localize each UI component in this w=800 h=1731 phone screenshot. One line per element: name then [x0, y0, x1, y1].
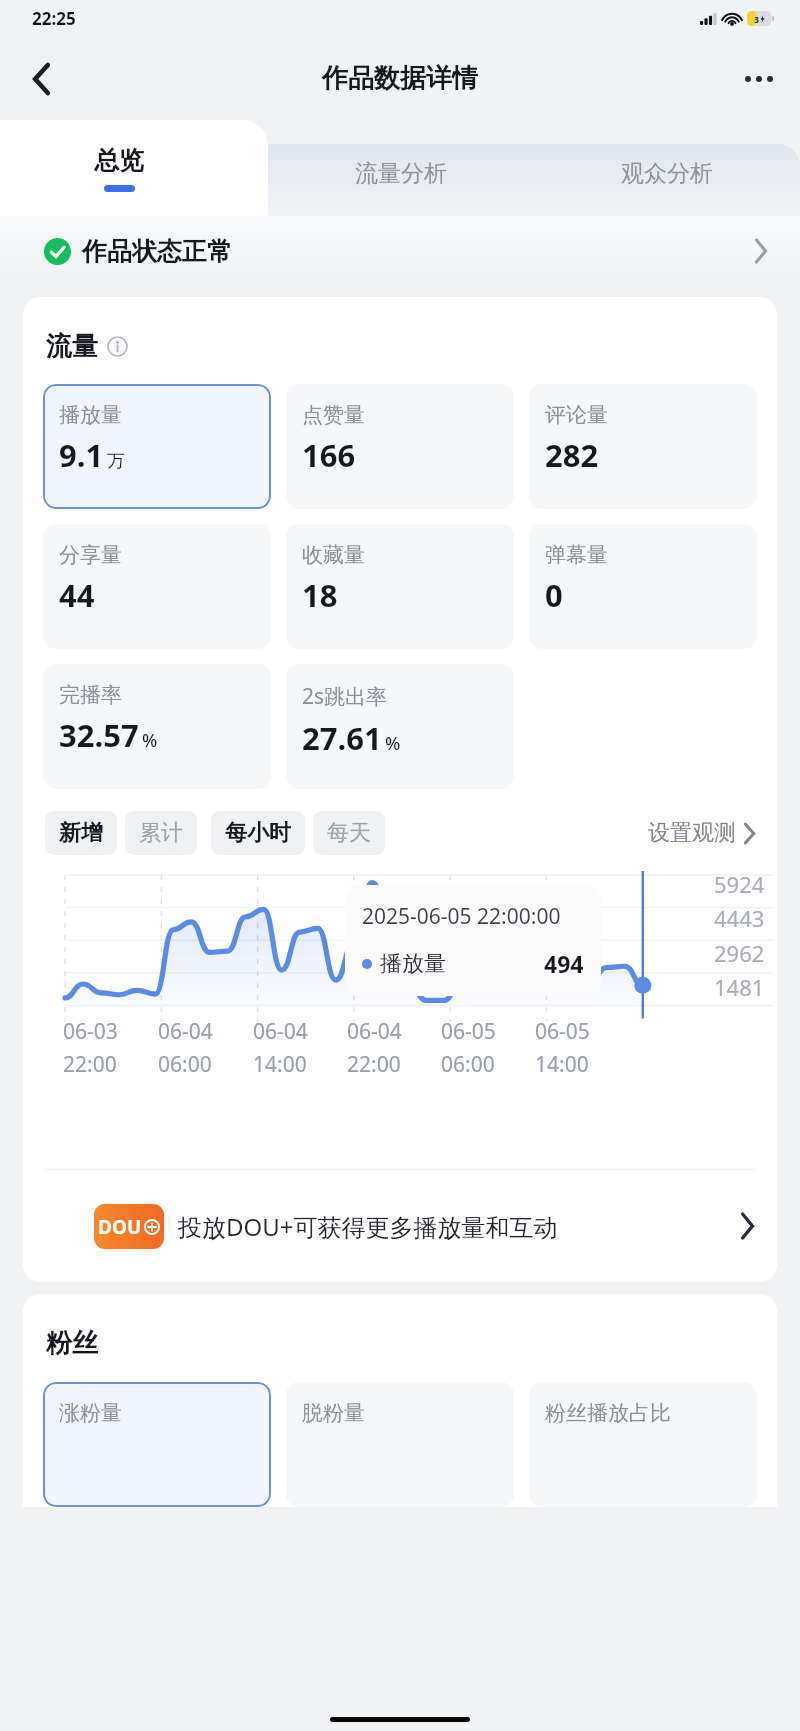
staticText: 投放DOU+可获得更多播放量和互动: [178, 1210, 558, 1243]
staticText: 完播率: [59, 682, 122, 708]
staticText: 2s跳出率: [302, 682, 388, 711]
staticText: 流量分析: [355, 159, 447, 188]
staticText: 每小时: [225, 819, 291, 847]
staticText: 收藏量: [302, 542, 365, 568]
button[interactable]: 每小时: [211, 811, 305, 855]
staticText: 9.1: [59, 434, 104, 476]
staticText: 06-04: [158, 1017, 213, 1046]
staticText: 涨粉量: [59, 1400, 122, 1426]
staticText: DOU: [98, 1214, 142, 1240]
staticText: 分享量: [59, 542, 122, 568]
staticText: %: [385, 731, 401, 756]
staticText: 4443: [714, 903, 765, 933]
button[interactable]: 新增: [45, 811, 117, 855]
staticText: 494: [544, 948, 584, 979]
staticText: 点赞量: [302, 402, 365, 428]
staticText: 评论量: [545, 402, 608, 428]
button[interactable]: 观众分析: [534, 144, 800, 216]
staticText: 22:25: [32, 7, 76, 30]
staticText: 观众分析: [621, 159, 713, 188]
staticText: 0: [545, 574, 563, 616]
staticText: 总览: [94, 145, 144, 176]
staticText: 粉丝: [46, 1327, 98, 1360]
staticText: 06-05: [441, 1017, 496, 1046]
staticText: 18: [302, 574, 338, 616]
staticText: 06:00: [158, 1050, 212, 1079]
staticText: 万: [107, 450, 125, 473]
staticText: 2962: [714, 938, 765, 968]
staticText: 流量: [46, 330, 98, 363]
staticText: 粉丝播放占比: [545, 1400, 671, 1426]
staticText: 播放量: [380, 950, 446, 978]
button[interactable]: DOU: [23, 1170, 777, 1282]
button[interactable]: 涨粉量: [43, 1382, 271, 1507]
staticText: 累计: [139, 819, 183, 847]
button[interactable]: 2s跳出率: [286, 664, 514, 789]
staticText: 22:00: [63, 1050, 117, 1079]
staticText: %: [142, 728, 158, 753]
staticText: 作品数据详情: [322, 62, 478, 95]
button[interactable]: 评论量: [529, 384, 757, 509]
button[interactable]: 脱粉量: [286, 1382, 514, 1507]
button[interactable]: 粉丝播放占比: [529, 1382, 757, 1507]
staticText: 弹幕量: [545, 542, 608, 568]
staticText: 06-04: [347, 1017, 402, 1046]
button[interactable]: 流量分析: [268, 144, 534, 216]
button[interactable]: 播放量: [43, 384, 271, 509]
staticText: 2025-06-05 22:00:00: [362, 902, 561, 931]
staticText: 06-03: [63, 1017, 118, 1046]
staticText: 27.61: [302, 717, 382, 759]
staticText: 3: [754, 13, 760, 25]
button[interactable]: 累计: [125, 811, 197, 855]
button[interactable]: More options: [732, 52, 786, 106]
button[interactable]: 完播率: [43, 664, 271, 789]
button[interactable]: 总览: [0, 120, 268, 216]
staticText: 1481: [714, 972, 765, 1002]
button[interactable]: 设置观测: [648, 819, 755, 847]
button[interactable]: 点赞量: [286, 384, 514, 509]
staticText: 作品状态正常: [82, 236, 232, 267]
button[interactable]: 每天: [313, 811, 385, 855]
staticText: 282: [545, 434, 599, 476]
staticText: 22:00: [347, 1050, 401, 1079]
button[interactable]: Back: [14, 52, 68, 106]
button[interactable]: 分享量: [43, 524, 271, 649]
button[interactable]: 弹幕量: [529, 524, 757, 649]
staticText: 每天: [327, 819, 371, 847]
staticText: 166: [302, 434, 356, 476]
staticText: 32.57: [59, 714, 139, 756]
staticText: 06-05: [535, 1017, 590, 1046]
staticText: 新增: [59, 819, 103, 847]
staticText: 44: [59, 574, 95, 616]
button[interactable]: 收藏量: [286, 524, 514, 649]
staticText: 14:00: [535, 1050, 589, 1079]
button[interactable]: 作品状态正常: [0, 216, 800, 286]
staticText: 设置观测: [648, 819, 736, 847]
staticText: 06-04: [253, 1017, 308, 1046]
staticText: 播放量: [59, 402, 122, 428]
staticText: 脱粉量: [302, 1400, 365, 1426]
staticText: 06:00: [441, 1050, 495, 1079]
staticText: 5924: [714, 869, 765, 899]
staticText: 14:00: [253, 1050, 307, 1079]
